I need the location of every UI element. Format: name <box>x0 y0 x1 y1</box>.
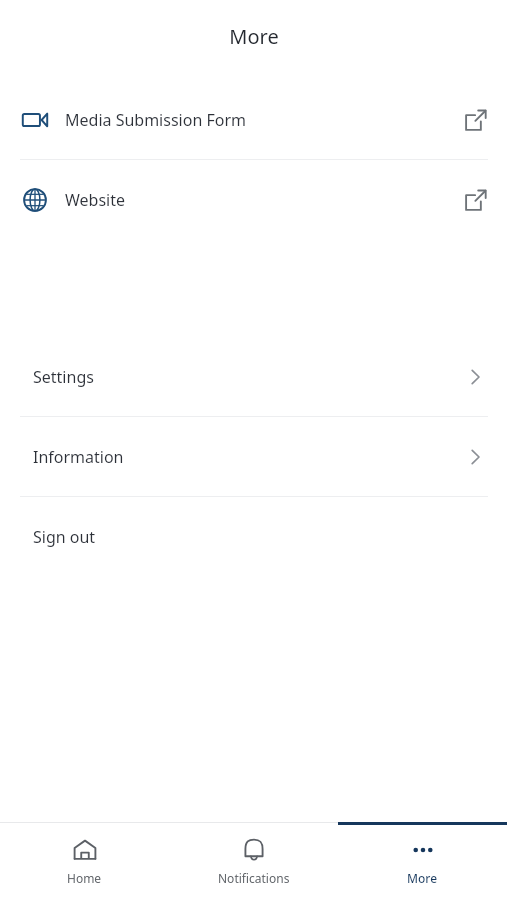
button[interactable]: Information <box>0 417 507 496</box>
staticText: Home <box>67 870 102 886</box>
staticText: Settings <box>33 366 94 388</box>
staticText: Media Submission Form <box>65 109 246 131</box>
staticText: More <box>407 870 438 886</box>
staticText: More <box>229 23 279 50</box>
button[interactable]: Media Submission Form <box>0 80 507 159</box>
staticText: Sign out <box>33 526 96 548</box>
button[interactable]: Website <box>0 160 507 239</box>
staticText: Notifications <box>218 870 290 886</box>
button[interactable]: Home <box>0 822 169 900</box>
other: Open Website in browser <box>465 189 487 211</box>
button[interactable]: More <box>338 822 507 900</box>
button[interactable]: Settings <box>0 337 507 416</box>
button[interactable]: Sign out <box>0 497 507 576</box>
staticText: Information <box>33 446 124 468</box>
button[interactable]: Notifications <box>169 822 338 900</box>
other: Open Media Submission Form in browser <box>465 109 487 131</box>
staticText: Website <box>65 189 126 211</box>
